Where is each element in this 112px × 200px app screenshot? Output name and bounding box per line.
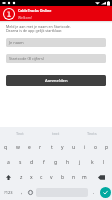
button[interactable]: h bbox=[62, 155, 74, 170]
button[interactable]: g bbox=[50, 155, 62, 170]
staticText: x bbox=[30, 174, 33, 181]
button[interactable]: Backspace bbox=[90, 170, 112, 185]
staticText: w bbox=[16, 144, 20, 151]
button[interactable]: f bbox=[38, 155, 50, 170]
button[interactable]: CableTracks Online bbox=[0, 6, 112, 21]
button[interactable]: k bbox=[86, 155, 98, 170]
staticText: d bbox=[30, 159, 34, 166]
button[interactable]: u bbox=[68, 140, 79, 155]
staticText: r bbox=[39, 144, 42, 151]
staticText: Texts bbox=[87, 131, 97, 136]
staticText: v bbox=[50, 174, 53, 181]
staticText: Meld je aan met je naam en Startcode. Da… bbox=[6, 24, 71, 33]
button[interactable]: q bbox=[0, 140, 12, 155]
button[interactable]: p bbox=[101, 140, 112, 155]
button[interactable]: j bbox=[74, 155, 86, 170]
button[interactable]: w bbox=[12, 140, 24, 155]
staticText: z bbox=[20, 174, 23, 181]
staticText: n bbox=[72, 174, 76, 181]
staticText: . bbox=[93, 189, 95, 196]
staticText: k bbox=[91, 159, 94, 166]
staticText: Welkom! bbox=[18, 15, 32, 20]
button[interactable]: Texts bbox=[74, 127, 110, 140]
staticText: c bbox=[40, 174, 43, 181]
button[interactable]: Startcode (8 cijfers) bbox=[6, 54, 106, 63]
staticText: p bbox=[105, 144, 109, 151]
button[interactable]: a bbox=[2, 155, 14, 170]
button[interactable]: y bbox=[57, 140, 68, 155]
button[interactable]: Je naam bbox=[6, 38, 106, 47]
staticText: CableTracks Online bbox=[18, 8, 52, 13]
button[interactable]: m bbox=[79, 170, 90, 185]
staticText: i bbox=[84, 144, 86, 151]
button[interactable]: e bbox=[24, 140, 35, 155]
button[interactable]: t bbox=[46, 140, 57, 155]
staticText: l bbox=[103, 159, 105, 166]
button[interactable]: Enter bbox=[98, 185, 112, 200]
button[interactable]: n bbox=[68, 170, 79, 185]
staticText: g bbox=[54, 159, 58, 166]
staticText: b bbox=[61, 174, 65, 181]
staticText: Startcode (8 cijfers) bbox=[9, 56, 45, 61]
button[interactable]: d bbox=[26, 155, 38, 170]
staticText: a bbox=[7, 159, 10, 166]
staticText: e bbox=[28, 144, 31, 151]
button[interactable]: l bbox=[98, 155, 110, 170]
button[interactable]: s bbox=[14, 155, 26, 170]
button[interactable]: text bbox=[38, 127, 74, 140]
staticText: Je naam bbox=[9, 40, 24, 45]
staticText: h bbox=[66, 159, 70, 166]
staticText: Aanmelden bbox=[45, 78, 68, 84]
button[interactable]: Shift bbox=[0, 170, 16, 185]
button[interactable]: v bbox=[46, 170, 57, 185]
button[interactable]: r bbox=[35, 140, 46, 155]
button[interactable]: i bbox=[79, 140, 90, 155]
staticText: m bbox=[82, 174, 87, 181]
button[interactable]: z bbox=[16, 170, 26, 185]
button[interactable]: x bbox=[26, 170, 36, 185]
button[interactable]: Aanmelden bbox=[6, 75, 106, 86]
staticText: Text bbox=[16, 131, 24, 136]
button[interactable]: o bbox=[90, 140, 101, 155]
staticText: u bbox=[72, 144, 76, 151]
button[interactable]: Text bbox=[2, 127, 38, 140]
staticText: t bbox=[51, 144, 53, 151]
button[interactable]: ?123 bbox=[0, 185, 17, 200]
button[interactable]: b bbox=[57, 170, 68, 185]
staticText: y bbox=[61, 144, 64, 151]
button[interactable]: . bbox=[89, 185, 98, 200]
button[interactable]: Emoji bbox=[26, 185, 35, 200]
staticText: f bbox=[43, 159, 45, 166]
staticText: q bbox=[4, 144, 8, 151]
staticText: j bbox=[79, 159, 81, 166]
staticText: s bbox=[19, 159, 22, 166]
button[interactable]: , bbox=[17, 185, 26, 200]
staticText: text bbox=[52, 131, 60, 136]
staticText: , bbox=[21, 189, 23, 196]
staticText: o bbox=[94, 144, 98, 151]
button[interactable]: c bbox=[36, 170, 46, 185]
staticText: ?123 bbox=[4, 190, 13, 195]
